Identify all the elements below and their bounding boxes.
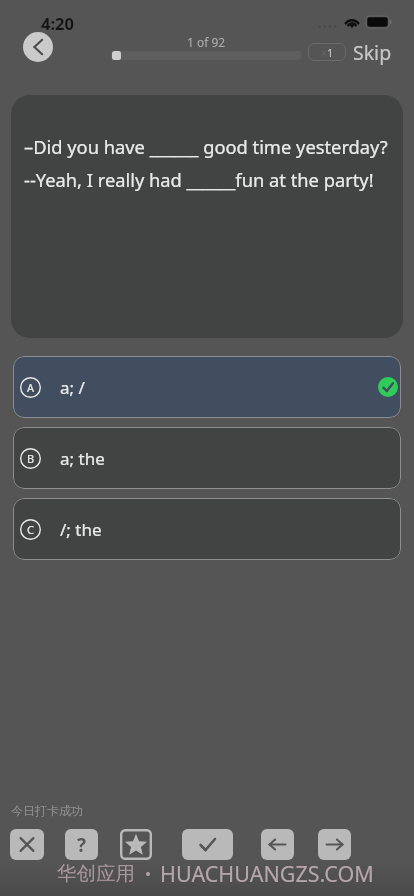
staticText: HUACHUANGZS.COM — [160, 859, 374, 888]
button[interactable]: Help — [65, 829, 98, 860]
staticText: 4:20 — [41, 12, 74, 34]
staticText: 1 — [327, 45, 334, 60]
staticText: A — [27, 380, 35, 395]
button[interactable]: –Did you have ______ good time yesterday… — [11, 95, 403, 338]
button[interactable]: B — [13, 427, 401, 489]
staticText: 华创应用 — [57, 861, 135, 886]
staticText: B — [27, 451, 35, 466]
button[interactable]: Back — [23, 32, 53, 62]
staticText: –Did you have ______ good time yesterday… — [24, 134, 388, 159]
staticText: × — [321, 46, 327, 60]
staticText: --Yeah, I really had ______fun at the pa… — [24, 167, 374, 192]
button[interactable]: Next — [318, 829, 351, 860]
staticText: ? — [77, 832, 87, 858]
staticText: Skip — [353, 39, 392, 66]
button[interactable]: C — [13, 498, 401, 560]
button[interactable]: A — [13, 356, 401, 418]
staticText: 今日打卡成功 — [11, 803, 83, 818]
button[interactable]: Close — [10, 829, 44, 860]
button[interactable]: Previous — [261, 829, 294, 860]
staticText: C — [27, 522, 34, 537]
button[interactable]: Favorite — [120, 829, 152, 860]
staticText: /; the — [60, 518, 102, 541]
button[interactable]: Confirm — [182, 829, 233, 860]
staticText: a; the — [60, 447, 105, 470]
button[interactable]: × — [308, 43, 346, 61]
staticText: 1 of 92 — [187, 34, 226, 50]
staticText: a; / — [60, 376, 85, 399]
button[interactable]: Skip — [353, 39, 392, 66]
